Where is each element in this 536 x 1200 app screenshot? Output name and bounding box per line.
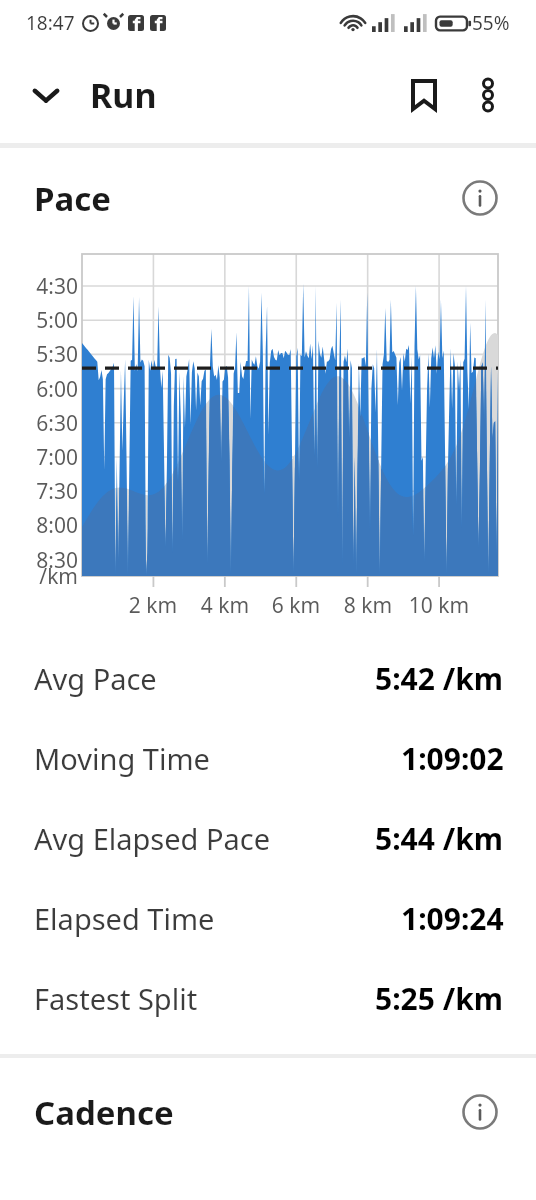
staticText: 4 km <box>183 591 267 620</box>
staticText: 8:00 <box>22 511 78 540</box>
staticText: Run <box>90 72 157 118</box>
staticText: 5:44 /km <box>375 818 504 859</box>
staticText: 10 km <box>397 591 481 620</box>
staticText: 18:47 <box>26 10 75 36</box>
button[interactable]: Fastest Split <box>0 958 536 1038</box>
staticText: 7:00 <box>22 443 78 472</box>
staticText: /km <box>22 562 78 591</box>
staticText: 8 km <box>326 591 410 620</box>
staticText: Avg Elapsed Pace <box>34 819 271 858</box>
staticText: 5:00 <box>22 306 78 335</box>
button[interactable]: Elapsed Time <box>0 878 536 958</box>
staticText: 1:09:24 <box>401 898 504 939</box>
button[interactable]: Info about Pace <box>454 172 506 224</box>
staticText: 1:09:02 <box>401 738 504 779</box>
button[interactable]: Avg Elapsed Pace <box>0 798 536 878</box>
staticText: Elapsed Time <box>34 899 215 938</box>
staticText: Pace <box>34 176 111 221</box>
staticText: 4:30 <box>22 272 78 301</box>
staticText: 6 km <box>254 591 338 620</box>
button[interactable]: Bookmark <box>396 67 452 123</box>
staticText: 5:30 <box>22 340 78 369</box>
staticText: 7:30 <box>22 477 78 506</box>
staticText: 8:30 <box>22 546 78 575</box>
staticText: 5:42 /km <box>375 658 504 699</box>
button[interactable]: Avg Pace <box>0 638 536 718</box>
button[interactable]: Moving Time <box>0 718 536 798</box>
button[interactable]: Collapse <box>20 69 72 121</box>
staticText: 6:30 <box>22 409 78 438</box>
staticText: Fastest Split <box>34 979 198 1018</box>
staticText: 55% <box>472 10 510 36</box>
staticText: Cadence <box>34 1090 174 1135</box>
staticText: Moving Time <box>34 739 210 778</box>
button[interactable]: Info about Cadence <box>454 1086 506 1138</box>
staticText: 6:00 <box>22 375 78 404</box>
staticText: 5:25 /km <box>375 978 504 1019</box>
staticText: 2 km <box>111 591 195 620</box>
button[interactable]: More options <box>460 67 516 123</box>
staticText: Avg Pace <box>34 659 157 698</box>
